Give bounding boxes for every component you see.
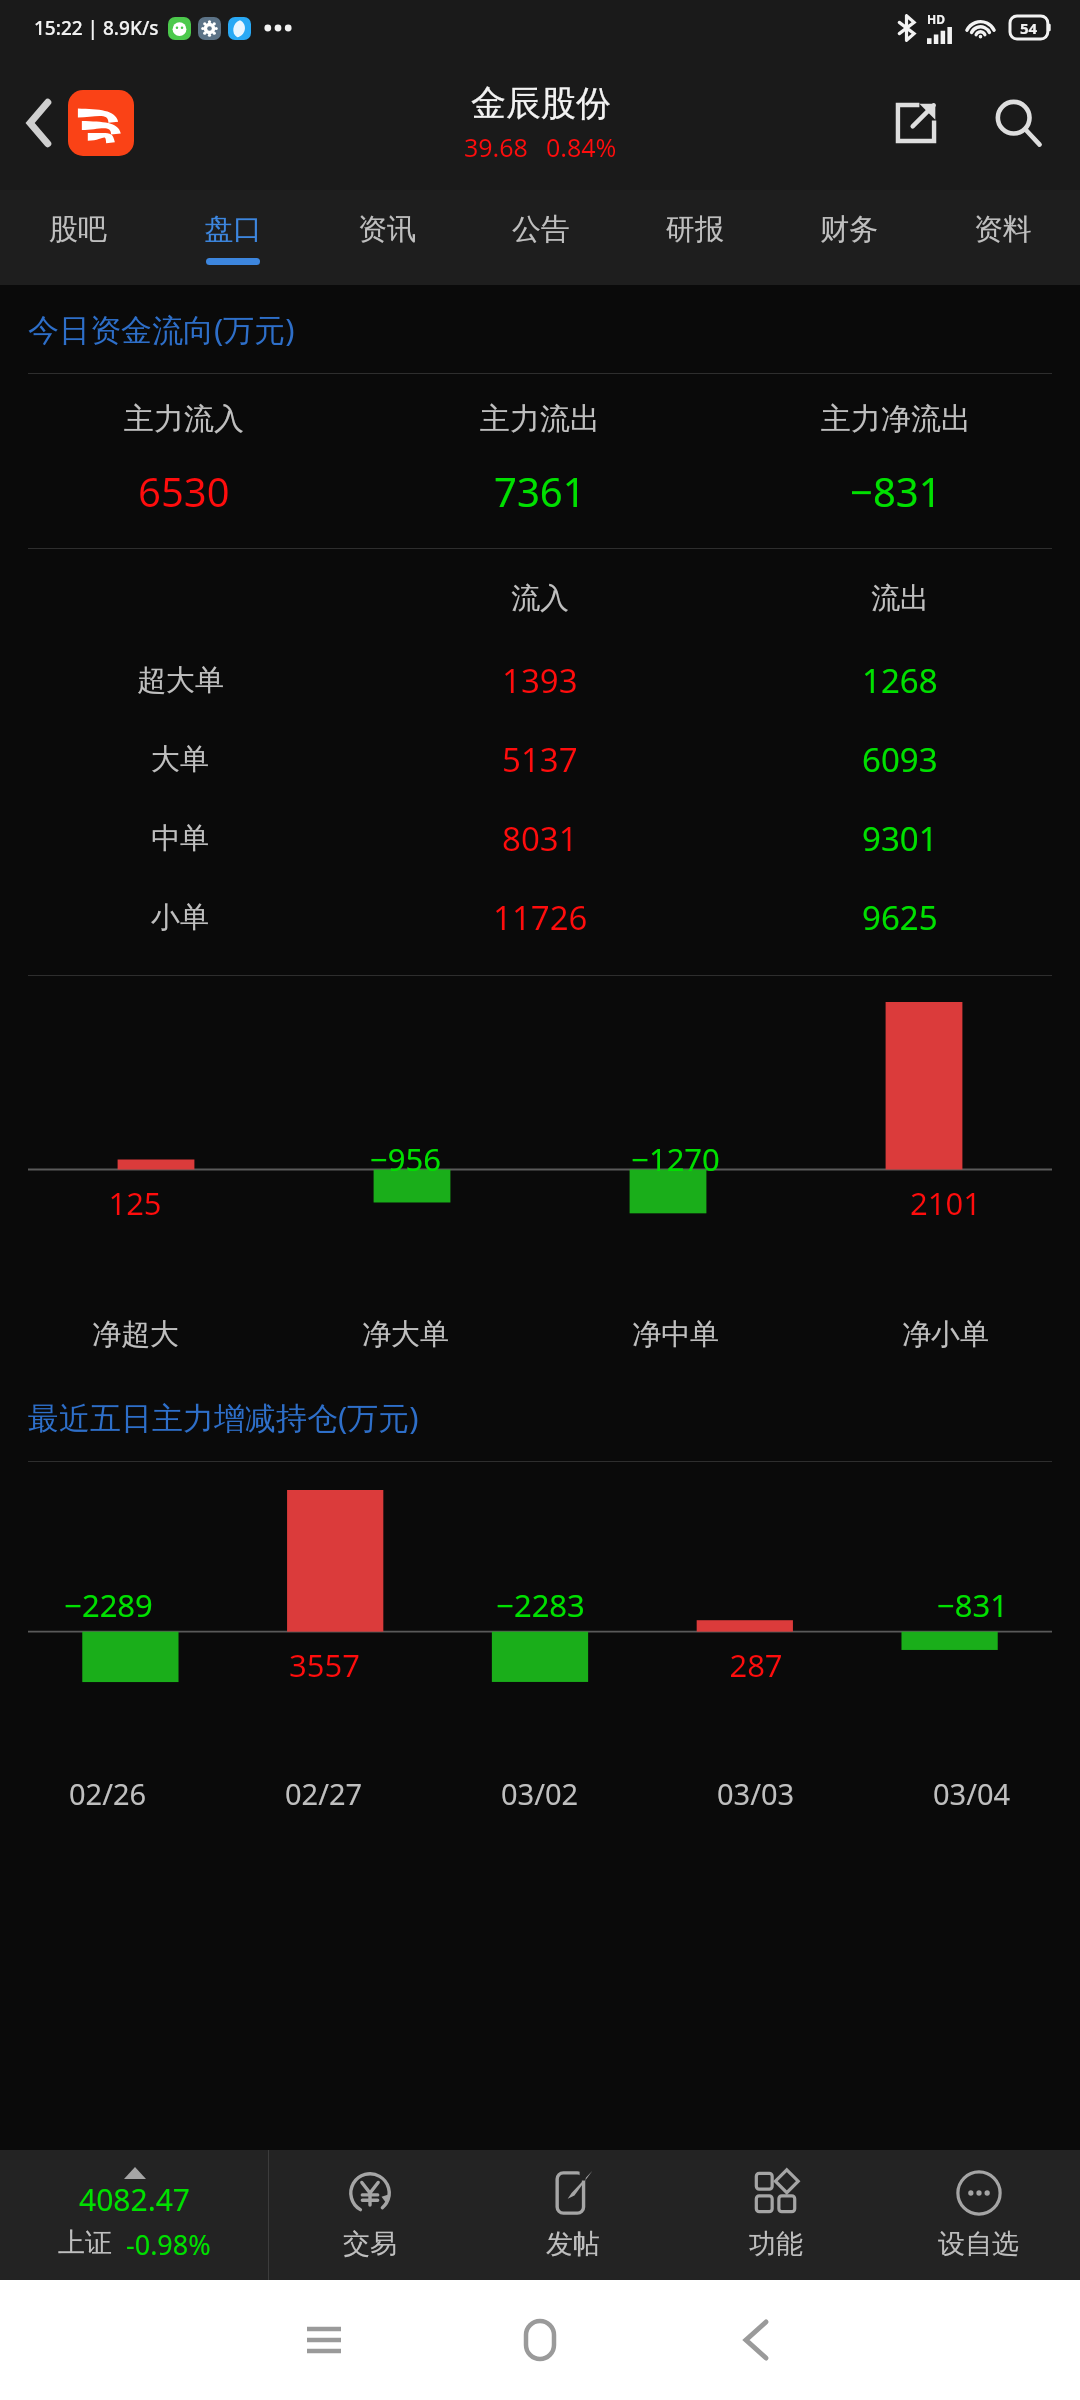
staticText: −2289: [64, 1584, 153, 1626]
button[interactable]: Recents: [216, 2280, 432, 2400]
staticText: 公告: [512, 211, 570, 248]
staticText: 发帖: [546, 2227, 600, 2261]
button[interactable]: 超大单: [0, 641, 1080, 720]
button[interactable]: 设自选: [877, 2150, 1080, 2280]
button[interactable]: 小单: [0, 878, 1080, 957]
staticText: 财务: [820, 211, 878, 248]
staticText: 超大单: [137, 662, 224, 699]
staticText: 6530: [138, 464, 230, 518]
staticText: 小单: [151, 899, 209, 936]
staticText: HD: [927, 11, 945, 27]
staticText: 6093: [862, 737, 938, 782]
staticText: −831: [850, 464, 942, 518]
staticText: −831: [937, 1584, 1008, 1626]
button[interactable]: 大单: [0, 720, 1080, 799]
button[interactable]: Home: [432, 2280, 648, 2400]
button[interactable]: App home: [68, 90, 134, 156]
staticText: 03/04: [933, 1774, 1011, 1813]
staticText: 02/27: [285, 1774, 363, 1813]
staticText: 7361: [494, 464, 586, 518]
staticText: 9301: [862, 816, 938, 861]
staticText: 大单: [151, 741, 209, 778]
button[interactable]: 公告: [464, 190, 618, 285]
staticText: 54: [1020, 18, 1038, 38]
staticText: 1393: [502, 658, 578, 703]
button[interactable]: 发帖: [471, 2150, 674, 2280]
staticText: 净中单: [632, 1316, 719, 1353]
staticText: −956: [370, 1138, 441, 1180]
staticText: 研报: [666, 211, 724, 248]
staticText: 流出: [871, 580, 929, 617]
staticText: 中单: [151, 820, 209, 857]
button[interactable]: 4082.47: [0, 2150, 268, 2280]
button[interactable]: 交易: [269, 2150, 471, 2280]
staticText: 上证: [58, 2226, 112, 2260]
button[interactable]: 资料: [926, 190, 1080, 285]
staticText: 0.84%: [546, 130, 617, 164]
staticText: 9625: [862, 895, 938, 940]
staticText: −1270: [631, 1138, 720, 1180]
button[interactable]: 研报: [618, 190, 772, 285]
staticText: 股吧: [49, 211, 107, 248]
staticText: 主力流出: [480, 400, 600, 438]
staticText: 8031: [502, 816, 578, 861]
staticText: 15:22 | 8.9K/s: [34, 15, 159, 41]
staticText: 11726: [493, 895, 588, 940]
staticText: 02/26: [69, 1774, 147, 1813]
staticText: 盘口: [204, 211, 262, 248]
button[interactable]: 股吧: [0, 190, 155, 285]
staticText: 5137: [502, 737, 578, 782]
staticText: −2283: [496, 1584, 585, 1626]
button[interactable]: 财务: [772, 190, 926, 285]
staticText: 流入: [511, 580, 569, 617]
staticText: 主力流入: [124, 400, 244, 438]
staticText: 最近五日主力增减持仓(万元): [28, 1396, 419, 1438]
staticText: 2101: [910, 1182, 981, 1224]
staticText: 资讯: [358, 211, 416, 248]
button[interactable]: Back: [648, 2280, 864, 2400]
staticText: 03/03: [717, 1774, 795, 1813]
staticText: 287: [729, 1644, 783, 1686]
staticText: 净小单: [902, 1316, 989, 1353]
staticText: 03/02: [501, 1774, 579, 1813]
staticText: 净超大: [92, 1316, 179, 1353]
button[interactable]: 资讯: [310, 190, 464, 285]
staticText: 交易: [343, 2227, 397, 2261]
button[interactable]: Share: [880, 87, 952, 159]
staticText: 功能: [749, 2227, 803, 2261]
staticText: 净大单: [362, 1316, 449, 1353]
staticText: 金辰股份: [471, 81, 611, 125]
staticText: 设自选: [938, 2227, 1019, 2261]
staticText: 今日资金流向(万元): [28, 308, 295, 350]
staticText: 125: [108, 1182, 162, 1224]
staticText: 主力净流出: [821, 400, 971, 438]
staticText: -0.98%: [126, 2226, 211, 2263]
button[interactable]: 功能: [674, 2150, 877, 2280]
staticText: 4082.47: [79, 2179, 190, 2220]
staticText: 3557: [289, 1644, 360, 1686]
button[interactable]: 中单: [0, 799, 1080, 878]
staticText: 1268: [862, 658, 938, 703]
button[interactable]: 盘口: [155, 190, 310, 285]
button[interactable]: Search: [980, 85, 1056, 161]
staticText: 39.68: [464, 130, 528, 164]
staticText: 资料: [974, 211, 1032, 248]
button[interactable]: Back: [8, 91, 72, 155]
